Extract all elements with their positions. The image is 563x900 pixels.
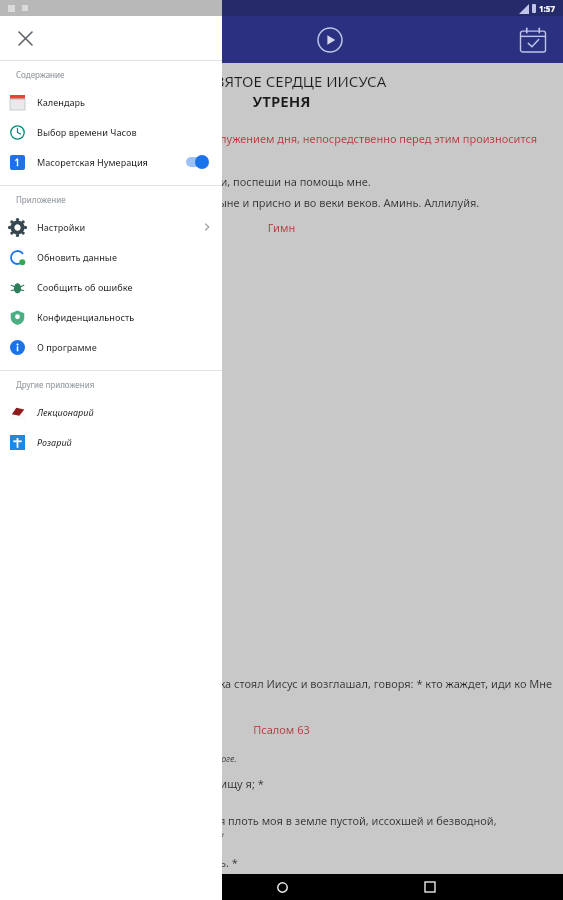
staticText: Настройки: [37, 221, 86, 233]
staticText: В последний же великий день праздника ст…: [10, 676, 553, 706]
button[interactable]: Розарий: [0, 427, 222, 457]
button[interactable]: Play: [308, 18, 352, 62]
button[interactable]: Recents: [415, 874, 445, 900]
button[interactable]: О программе: [0, 332, 222, 362]
button[interactable]: Обновить данные: [0, 242, 222, 272]
staticText: Приложение: [16, 194, 66, 205]
staticText: Гимн: [0, 220, 563, 235]
staticText: Псалом 63: [0, 722, 563, 737]
staticText: Календарь: [37, 96, 86, 108]
button[interactable]: 11.06.2021: [24, 22, 91, 58]
staticText: Обновить данные: [37, 251, 118, 263]
button[interactable]: Close: [7, 20, 43, 56]
button[interactable]: Конфиденциальность: [0, 302, 222, 332]
button[interactable]: Сообщить об ошибке: [0, 272, 222, 302]
button[interactable]: Лекционарий: [0, 397, 222, 427]
button[interactable]: Настройки: [0, 212, 222, 242]
staticText: Лекционарий: [37, 406, 94, 418]
staticText: Слава Отцу и Сыну и Святому Духу, и ныне…: [10, 195, 553, 210]
button[interactable]: Home: [267, 874, 297, 900]
staticText: Выбор времени Часов: [37, 126, 137, 138]
staticText: Душа жаждет Бога: [10, 737, 553, 752]
staticText: Конфиденциальность: [37, 311, 135, 323]
staticText: Другие приложения: [16, 379, 95, 390]
staticText: УТРЕНЯ: [0, 91, 563, 111]
staticText: Церковь народов, среди тьмы бодрствующий…: [10, 752, 553, 764]
staticText: Содержание: [16, 69, 65, 80]
button[interactable]: Масоретская Нумерация: [0, 147, 222, 177]
staticText: Боже, поспеши мне на помощь; Господи, по…: [10, 174, 553, 189]
staticText: Если Утреня является первым богослужение…: [10, 131, 553, 146]
staticText: Розарий: [37, 436, 72, 448]
staticText: Масоретская Нумерация: [37, 156, 148, 168]
staticText: Боже, Ты Бог мой, Тебя от ранней зари ищ…: [10, 776, 553, 791]
staticText: 1:57: [539, 3, 555, 14]
staticText: ПРЕСВЯТОЕ СЕРДЦЕ ИИСУСА: [0, 71, 563, 91]
staticText: чтобы видеть силу Твою и славу Твою, *: [10, 828, 553, 843]
staticText: Тебя жаждет душа моя, по Тебе томится пл…: [10, 813, 553, 828]
staticText: Ибо милость Твоя лучше, нежели жизнь. *: [10, 855, 553, 870]
staticText: 11.06.2021: [24, 22, 91, 40]
button[interactable]: Календарь: [0, 87, 222, 117]
staticText: О программе: [37, 341, 97, 353]
button[interactable]: Calendar: [511, 18, 555, 62]
button[interactable]: Выбор времени Часов: [0, 117, 222, 147]
staticText: Сообщить об ошибке: [37, 281, 133, 293]
